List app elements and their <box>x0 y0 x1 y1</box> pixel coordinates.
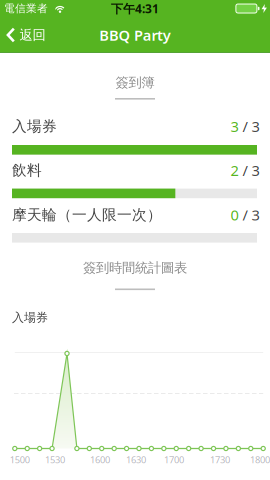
staticText: / 3 <box>238 117 259 136</box>
staticText: 1600 <box>90 453 110 466</box>
staticText: 1800 <box>250 453 270 466</box>
staticText: 1500 <box>10 453 30 466</box>
staticText: 簽到簿 <box>115 74 154 91</box>
staticText: 簽到時間統計圖表 <box>83 260 187 276</box>
staticText: 摩天輪（一人限一次） <box>12 206 162 224</box>
staticText: 飲料 <box>12 161 42 179</box>
staticText: 返回 <box>19 27 45 43</box>
staticText: 下午4:31 <box>111 0 159 16</box>
staticText: 入場券 <box>12 310 48 325</box>
staticText: BBQ Party <box>99 25 171 45</box>
staticText: 1700 <box>164 453 184 466</box>
staticText: 1630 <box>126 453 146 466</box>
staticText: 1530 <box>45 453 65 466</box>
staticText: / 3 <box>238 205 259 225</box>
staticText: 1730 <box>210 453 230 466</box>
button[interactable]: 返回 <box>0 17 45 53</box>
staticText: 2 <box>230 161 238 180</box>
staticText: 3 <box>230 117 238 136</box>
staticText: 入場券 <box>12 117 57 135</box>
staticText: / 3 <box>238 161 259 180</box>
staticText: 0 <box>230 205 238 225</box>
staticText: 電信業者 <box>4 2 48 15</box>
